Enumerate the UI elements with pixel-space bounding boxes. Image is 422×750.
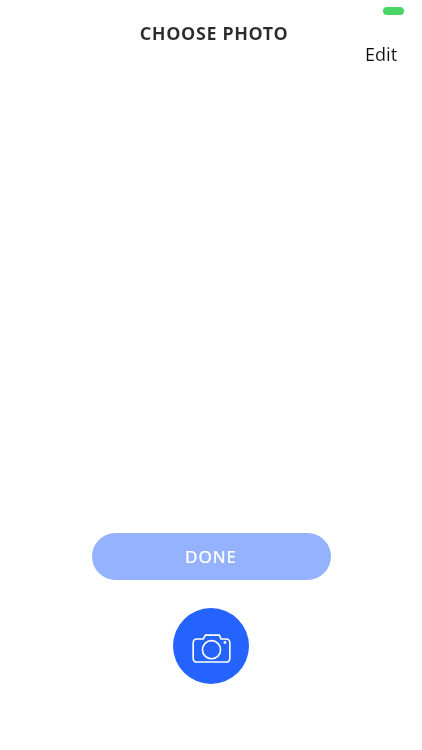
- button[interactable]: DONE: [92, 533, 331, 580]
- staticText: Edit: [365, 42, 398, 67]
- button[interactable]: Take photo: [173, 608, 249, 684]
- button[interactable]: Edit: [359, 39, 404, 70]
- staticText: DONE: [185, 545, 238, 568]
- staticText: CHOOSE PHOTO: [3, 21, 422, 46]
